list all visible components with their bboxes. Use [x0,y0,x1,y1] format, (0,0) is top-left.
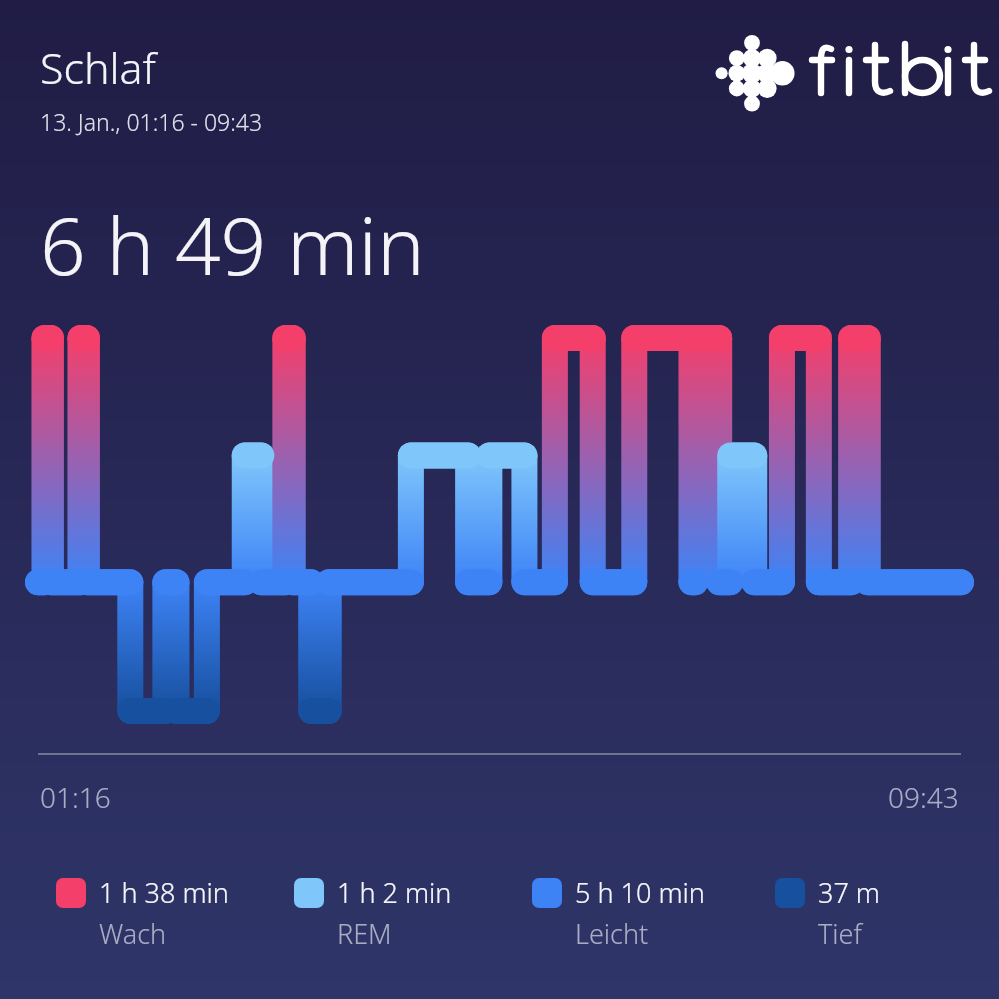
staticText: 5 h 10 min [575,874,705,911]
staticText: 1 h 2 min [337,874,452,911]
button[interactable]: fitbit logo [725,40,957,104]
button[interactable]: 1 h 38 min [56,874,294,952]
button[interactable]: 5 h 10 min [532,874,775,952]
button[interactable]: 37 m [775,874,981,952]
staticText: 01:16 [40,778,111,816]
staticText: 1 h 38 min [99,874,229,911]
staticText: 13. Jan., 01:16 - 09:43 [40,106,263,137]
staticText: 09:43 [888,778,959,816]
staticText: Schlaf [40,38,156,97]
staticText: 37 m [818,874,880,911]
button[interactable]: 1 h 2 min [294,874,532,952]
staticText: Leicht [575,915,649,952]
button[interactable] [38,324,961,736]
staticText: 6 h 49 min [40,189,425,298]
staticText: Tief [818,915,862,952]
staticText: Wach [99,915,167,952]
staticText: REM [337,915,392,952]
